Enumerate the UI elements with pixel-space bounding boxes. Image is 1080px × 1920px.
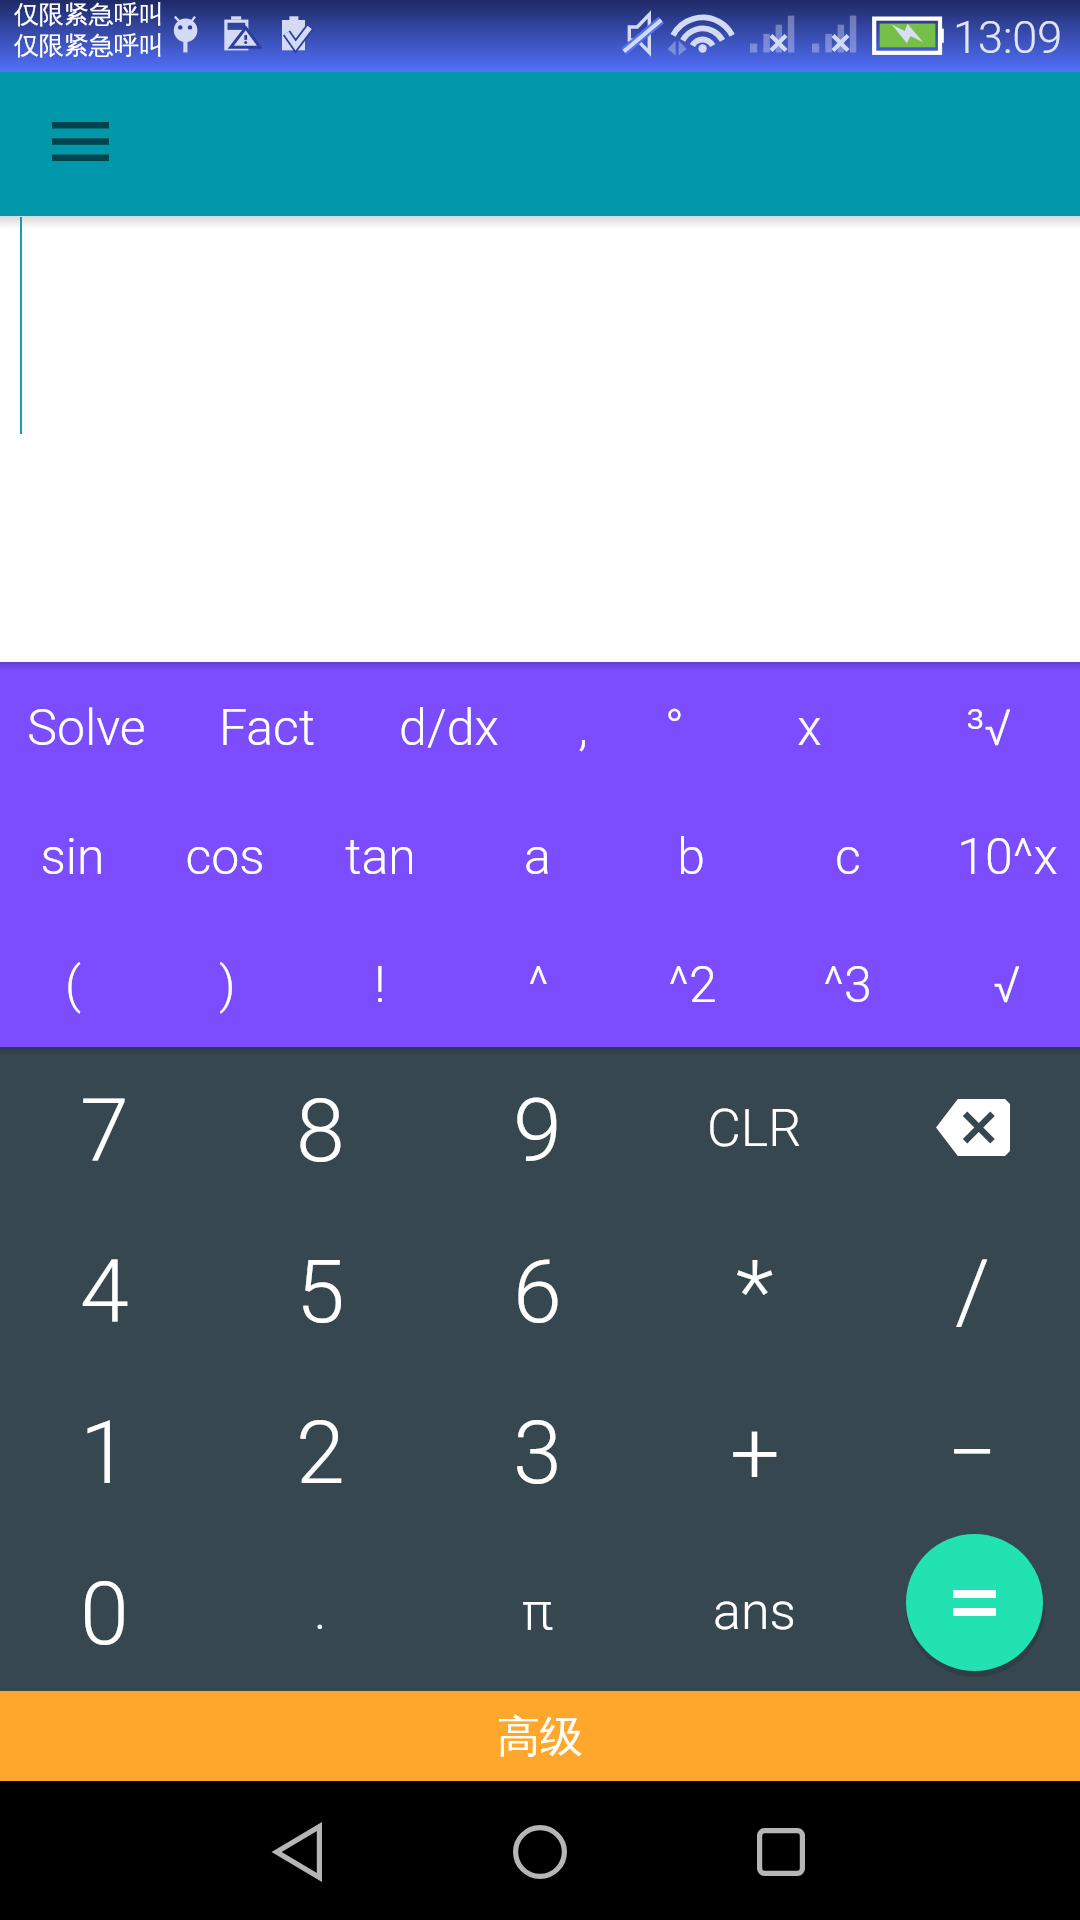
button[interactable]: 6: [431, 1208, 644, 1369]
button[interactable]: c: [762, 791, 934, 919]
button[interactable]: 3: [431, 1369, 644, 1530]
button[interactable]: 5: [209, 1208, 431, 1369]
staticText: (: [65, 956, 81, 1015]
button[interactable]: 4: [0, 1208, 209, 1369]
staticText: cos: [185, 828, 265, 887]
staticText: x: [797, 699, 822, 758]
staticText: b: [677, 828, 705, 887]
staticText: 3: [513, 1401, 562, 1504]
staticText: 仅限紧急呼叫: [14, 0, 164, 30]
button[interactable]: 1: [0, 1369, 209, 1530]
staticText: ^2: [668, 956, 717, 1015]
button[interactable]: a: [454, 791, 620, 919]
button[interactable]: b: [620, 791, 762, 919]
button[interactable]: tan: [306, 791, 454, 919]
button[interactable]: ^2: [624, 919, 760, 1047]
button[interactable]: Recent apps: [721, 1792, 841, 1912]
staticText: tan: [345, 828, 416, 887]
staticText: 7: [80, 1079, 129, 1182]
button[interactable]: ,: [538, 662, 628, 791]
staticText: !: [374, 956, 386, 1015]
button[interactable]: /: [865, 1208, 1080, 1369]
staticText: /: [955, 1240, 990, 1343]
button[interactable]: Equals: [865, 1530, 1080, 1691]
button[interactable]: .: [209, 1530, 431, 1691]
button[interactable]: Equals: [906, 1534, 1043, 1671]
button[interactable]: °: [628, 662, 720, 791]
button[interactable]: ^: [452, 919, 624, 1047]
button[interactable]: √: [934, 919, 1080, 1047]
staticText: 13:09: [953, 11, 1063, 64]
staticText: ): [219, 956, 236, 1015]
button[interactable]: *: [644, 1208, 865, 1369]
button[interactable]: 2: [209, 1369, 431, 1530]
staticText: −: [947, 1401, 998, 1504]
button[interactable]: π: [431, 1530, 644, 1691]
staticText: √: [993, 956, 1021, 1015]
staticText: 9: [513, 1079, 562, 1182]
button[interactable]: 高级: [0, 1691, 1080, 1781]
staticText: .: [314, 1581, 327, 1642]
staticText: 仅限紧急呼叫: [14, 30, 164, 61]
staticText: 1: [80, 1401, 129, 1504]
staticText: *: [736, 1240, 774, 1343]
button[interactable]: ): [146, 919, 308, 1047]
staticText: CLR: [707, 1098, 802, 1159]
button[interactable]: 7: [0, 1047, 209, 1208]
staticText: ans: [713, 1581, 796, 1642]
button[interactable]: Solve: [0, 662, 173, 791]
staticText: 10^x: [957, 828, 1058, 887]
staticText: π: [522, 1581, 553, 1642]
button[interactable]: CLR: [644, 1047, 865, 1208]
staticText: 2: [296, 1401, 345, 1504]
button[interactable]: Fact: [173, 662, 360, 791]
button[interactable]: d/dx: [360, 662, 538, 791]
staticText: ^3: [823, 956, 872, 1015]
button[interactable]: Home: [480, 1792, 600, 1912]
button[interactable]: x: [720, 662, 898, 791]
button[interactable]: Open navigation menu: [30, 91, 130, 191]
staticText: d/dx: [399, 699, 499, 758]
button[interactable]: 0: [0, 1530, 209, 1691]
staticText: 0: [80, 1562, 129, 1665]
staticText: 高级: [497, 1710, 583, 1764]
button[interactable]: −: [865, 1369, 1080, 1530]
staticText: Solve: [27, 699, 146, 758]
staticText: sin: [40, 828, 105, 887]
staticText: +: [730, 1401, 780, 1504]
staticText: ,: [578, 699, 588, 758]
button[interactable]: 9: [431, 1047, 644, 1208]
button[interactable]: ans: [644, 1530, 865, 1691]
staticText: 6: [513, 1240, 562, 1343]
staticText: 5: [296, 1240, 345, 1343]
staticText: 4: [80, 1240, 129, 1343]
button[interactable]: Backspace: [865, 1047, 1080, 1208]
button[interactable]: +: [644, 1369, 865, 1530]
staticText: ³√: [966, 699, 1012, 758]
staticText: a: [524, 828, 551, 887]
staticText: ^: [528, 956, 549, 1015]
button[interactable]: ³√: [898, 662, 1080, 791]
button[interactable]: (: [0, 919, 146, 1047]
button[interactable]: sin: [0, 791, 144, 919]
staticText: Fact: [219, 699, 315, 758]
button[interactable]: 10^x: [934, 791, 1080, 919]
button[interactable]: Back: [238, 1792, 358, 1912]
button[interactable]: ^3: [760, 919, 934, 1047]
staticText: 8: [296, 1079, 345, 1182]
button[interactable]: cos: [144, 791, 306, 919]
staticText: °: [665, 699, 684, 758]
staticText: c: [835, 828, 861, 887]
button[interactable]: 8: [209, 1047, 431, 1208]
button[interactable]: !: [308, 919, 452, 1047]
